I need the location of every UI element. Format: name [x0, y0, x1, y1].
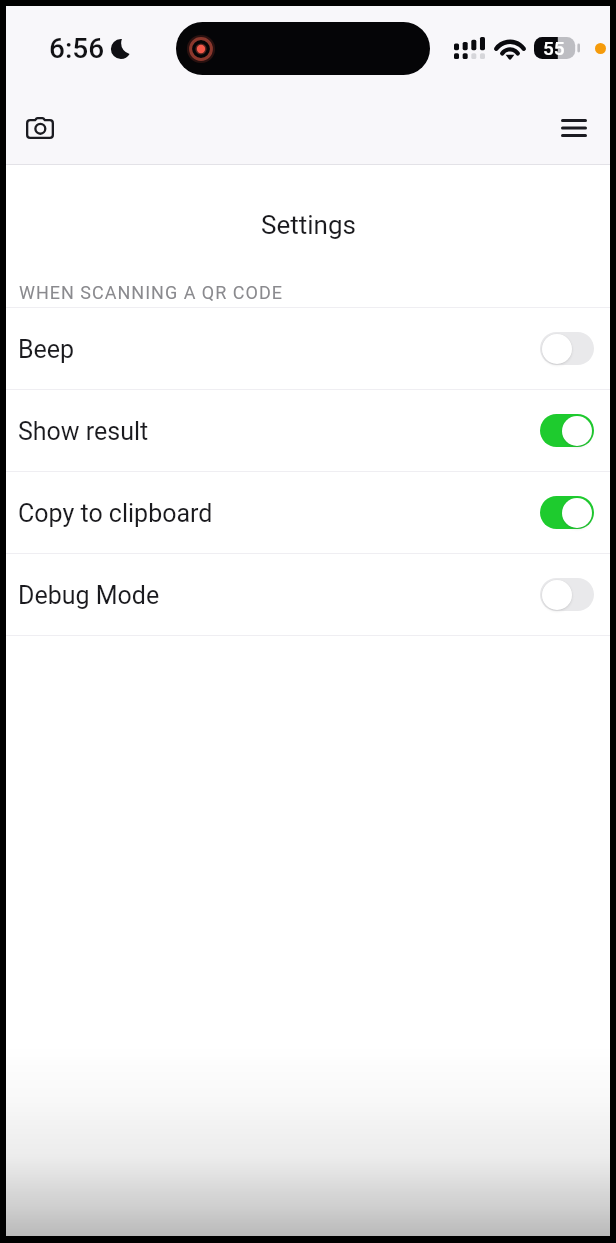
- staticText: Debug Mode: [18, 581, 160, 610]
- button[interactable]: Camera: [12, 100, 68, 156]
- button[interactable]: Beep, off: [540, 332, 594, 365]
- staticText: Copy to clipboard: [18, 499, 213, 528]
- staticText: Show result: [18, 417, 149, 446]
- button[interactable]: Show result: [6, 390, 610, 471]
- staticText: 55: [543, 37, 565, 59]
- button[interactable]: Debug Mode, off: [540, 578, 594, 611]
- staticText: Beep: [18, 335, 75, 364]
- staticText: Settings: [261, 210, 356, 240]
- button[interactable]: Show result, on: [540, 414, 594, 447]
- button[interactable]: Menu: [546, 100, 602, 156]
- button[interactable]: Copy to clipboard, on: [540, 496, 594, 529]
- button[interactable]: Beep: [6, 308, 610, 389]
- button[interactable]: Debug Mode: [6, 554, 610, 635]
- button[interactable]: Copy to clipboard: [6, 472, 610, 553]
- staticText: WHEN SCANNING A QR CODE: [19, 282, 283, 303]
- staticText: 6:56: [49, 32, 105, 65]
